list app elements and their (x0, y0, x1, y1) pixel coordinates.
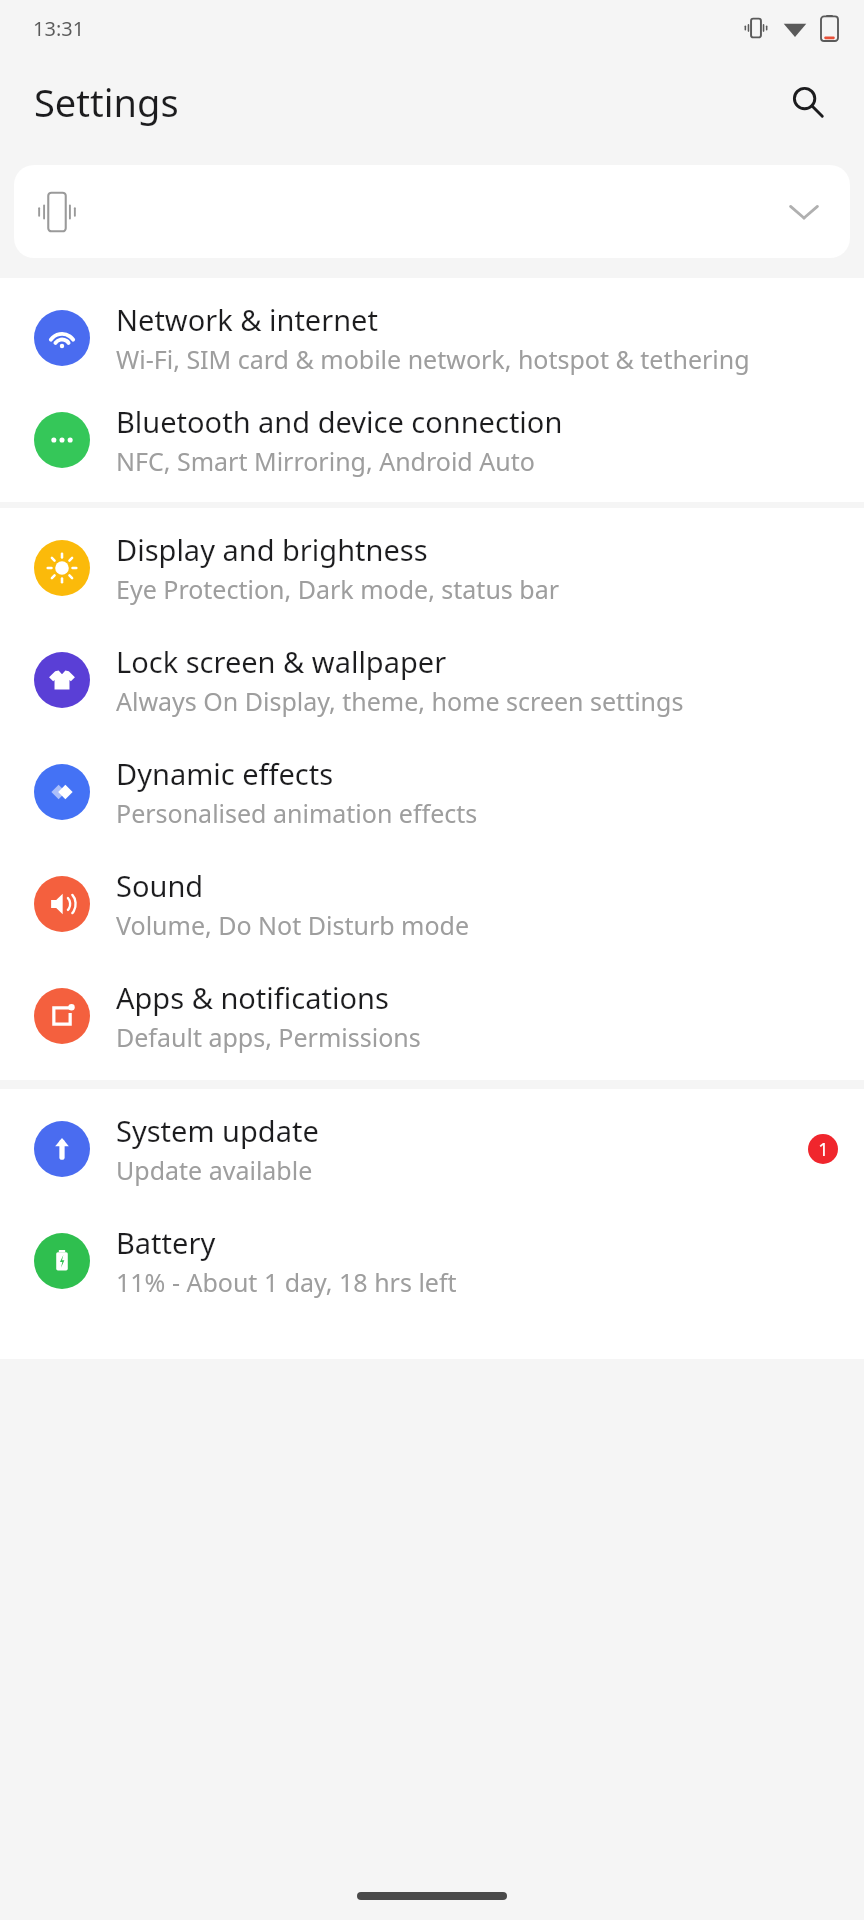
staticText: 13:31 (33, 15, 85, 42)
other: Expand (788, 202, 820, 222)
button[interactable]: Network & internet (0, 300, 864, 376)
staticText: Lock screen & wallpaper (116, 642, 447, 681)
staticText: Volume, Do Not Disturb mode (116, 908, 470, 942)
staticText: 1 (818, 1137, 829, 1162)
staticText: System update (116, 1111, 319, 1150)
staticText: Default apps, Permissions (116, 1020, 421, 1054)
staticText: Wi-Fi, SIM card & mobile network, hotspo… (116, 342, 750, 376)
button[interactable]: Battery (0, 1223, 864, 1299)
staticText: Update available (116, 1153, 313, 1187)
button[interactable]: Expand (14, 165, 850, 258)
button[interactable]: Dynamic effects (0, 754, 864, 830)
staticText: Battery (116, 1223, 216, 1262)
staticText: 11% - About 1 day, 18 hrs left (116, 1265, 457, 1299)
button[interactable]: System update (0, 1111, 864, 1187)
staticText: NFC, Smart Mirroring, Android Auto (116, 444, 535, 478)
staticText: Personalised animation effects (116, 796, 478, 830)
button[interactable]: Lock screen & wallpaper (0, 642, 864, 718)
button[interactable]: Apps & notifications (0, 978, 864, 1054)
staticText: Settings (34, 76, 179, 128)
button[interactable]: Sound (0, 866, 864, 942)
button[interactable]: Display and brightness (0, 530, 864, 606)
staticText: Sound (116, 866, 204, 905)
staticText: Network & internet (116, 300, 378, 339)
button[interactable]: Bluetooth and device connection (0, 402, 864, 478)
staticText: Always On Display, theme, home screen se… (116, 684, 684, 718)
staticText: Dynamic effects (116, 754, 334, 793)
button[interactable]: Search (778, 72, 838, 132)
staticText: Display and brightness (116, 530, 428, 569)
staticText: Apps & notifications (116, 978, 389, 1017)
staticText: Eye Protection, Dark mode, status bar (116, 572, 560, 606)
staticText: Bluetooth and device connection (116, 402, 563, 441)
